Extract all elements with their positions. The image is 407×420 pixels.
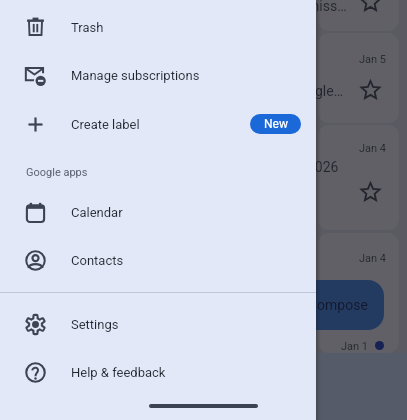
staticText: Trash — [71, 20, 104, 35]
staticText: Jan 1 — [341, 340, 369, 353]
button[interactable]: Compose — [292, 280, 384, 330]
staticText: Help & feedback — [71, 365, 166, 380]
staticText: Google apps — [26, 166, 88, 179]
staticText: Jan 4 — [359, 142, 387, 155]
staticText: Create label — [71, 117, 140, 132]
staticText: Settings — [71, 317, 119, 332]
staticText: miss… — [307, 0, 347, 14]
button[interactable]: Calendar — [0, 188, 316, 236]
staticText: Calendar — [71, 205, 123, 220]
staticText: 2026 — [307, 159, 339, 175]
button[interactable]: Help & feedback — [0, 348, 316, 396]
staticText: New — [264, 117, 288, 131]
staticText: Jan 5 — [359, 53, 387, 66]
button[interactable]: Trash — [0, 3, 316, 51]
button[interactable]: Settings — [0, 300, 316, 348]
staticText: Manage subscriptions — [71, 68, 200, 83]
staticText: Compose — [308, 297, 368, 313]
button[interactable]: New — [250, 114, 301, 134]
staticText: Contacts — [71, 253, 124, 268]
staticText: Jan 4 — [359, 252, 387, 265]
button[interactable]: Create label — [0, 100, 316, 148]
button[interactable]: Manage subscriptions — [0, 51, 316, 99]
staticText: ogle… — [307, 83, 344, 99]
button[interactable]: Contacts — [0, 236, 316, 284]
